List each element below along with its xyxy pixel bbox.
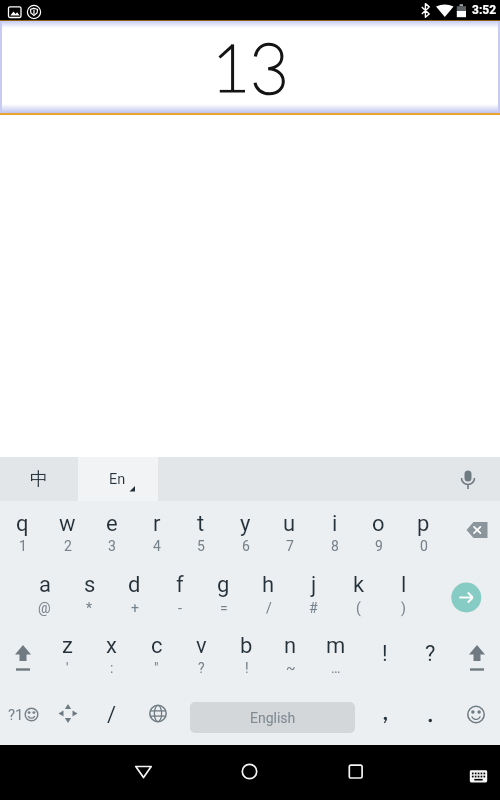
staticText: e	[106, 511, 118, 537]
staticText: 1	[19, 538, 27, 554]
button[interactable]: a	[22, 562, 67, 623]
button[interactable]: y	[223, 501, 268, 562]
staticText: ~	[286, 660, 296, 676]
button[interactable]	[441, 562, 500, 623]
staticText: 8	[331, 538, 339, 554]
staticText: 2	[64, 538, 72, 554]
staticText: i	[332, 511, 338, 537]
button[interactable]	[454, 623, 500, 684]
staticText: /	[266, 600, 272, 616]
staticText: 7	[286, 538, 294, 554]
button[interactable]	[122, 750, 166, 795]
staticText: x	[106, 633, 117, 659]
button[interactable]: z	[45, 623, 90, 684]
button[interactable]: English	[190, 702, 355, 733]
staticText: @	[38, 600, 51, 616]
button[interactable]: r	[134, 501, 179, 562]
button[interactable]: n	[268, 623, 313, 684]
button[interactable]: d	[112, 562, 157, 623]
staticText: 0	[420, 538, 428, 554]
button[interactable]: En	[78, 457, 158, 501]
button[interactable]: ?	[408, 623, 453, 684]
staticText: #	[309, 600, 318, 616]
staticText: j	[311, 572, 317, 598]
button[interactable]	[457, 750, 497, 795]
button[interactable]: p	[401, 501, 446, 562]
staticText: d	[128, 572, 141, 598]
button[interactable]: /	[89, 684, 134, 745]
staticText: o	[372, 511, 385, 537]
staticText: l	[401, 572, 407, 598]
staticText: *	[86, 600, 93, 616]
button[interactable]	[363, 684, 408, 745]
button[interactable]: i	[312, 501, 357, 562]
staticText: n	[284, 633, 297, 659]
staticText: 3	[108, 538, 116, 554]
button[interactable]: j	[291, 562, 336, 623]
staticText: z	[62, 633, 73, 659]
button[interactable]: b	[224, 623, 269, 684]
button[interactable]	[446, 501, 500, 562]
staticText: 3:52	[472, 3, 497, 17]
staticText: a	[39, 572, 51, 598]
staticText: y	[240, 511, 251, 537]
staticText: ?	[425, 641, 436, 667]
staticText: 中	[30, 468, 48, 491]
staticText: !	[382, 641, 388, 667]
staticText: ?1	[8, 706, 24, 724]
staticText: v	[196, 633, 207, 659]
button[interactable]: m	[313, 623, 358, 684]
staticText: s	[84, 572, 96, 598]
staticText: )	[401, 600, 406, 616]
button[interactable]	[446, 457, 490, 501]
button[interactable]: s	[67, 562, 112, 623]
staticText: w	[59, 511, 76, 537]
staticText: r	[153, 511, 161, 537]
staticText: t	[197, 511, 205, 537]
button[interactable]: x	[89, 623, 134, 684]
staticText: :	[110, 660, 114, 676]
button[interactable]: ?1	[0, 684, 46, 745]
button[interactable]	[0, 623, 46, 684]
button[interactable]	[454, 684, 500, 745]
button[interactable]: t	[178, 501, 223, 562]
staticText: p	[417, 511, 430, 537]
button[interactable]: !	[362, 623, 407, 684]
button[interactable]: c	[134, 623, 179, 684]
staticText: English	[250, 710, 296, 726]
button[interactable]: q	[0, 501, 45, 562]
button[interactable]	[136, 684, 180, 745]
button[interactable]: g	[201, 562, 246, 623]
staticText: "	[154, 660, 159, 676]
staticText: g	[217, 572, 230, 598]
staticText: f	[176, 572, 184, 598]
staticText: h	[262, 572, 275, 598]
button[interactable]: w	[45, 501, 90, 562]
staticText: (	[356, 600, 361, 616]
staticText: …	[331, 660, 341, 676]
staticText: !	[245, 660, 249, 676]
button[interactable]: 中	[0, 457, 78, 501]
staticText: q	[16, 511, 29, 537]
staticText: u	[283, 511, 296, 537]
button[interactable]: u	[267, 501, 312, 562]
staticText: 5	[197, 538, 205, 554]
button[interactable]: v	[179, 623, 224, 684]
staticText: -	[178, 600, 182, 616]
button[interactable]	[228, 750, 272, 795]
button[interactable]: f	[157, 562, 202, 623]
button[interactable]	[0, 21, 500, 113]
button[interactable]: k	[336, 562, 381, 623]
button[interactable]: l	[381, 562, 426, 623]
staticText: ?	[198, 660, 205, 676]
button[interactable]: o	[356, 501, 401, 562]
staticText: =	[220, 600, 228, 616]
button[interactable]: h	[246, 562, 291, 623]
staticText: '	[66, 660, 69, 676]
button[interactable]	[408, 684, 453, 745]
button[interactable]: e	[89, 501, 134, 562]
button[interactable]	[334, 750, 378, 795]
button[interactable]	[46, 684, 90, 745]
staticText: +	[131, 600, 139, 616]
staticText: En	[109, 471, 126, 488]
